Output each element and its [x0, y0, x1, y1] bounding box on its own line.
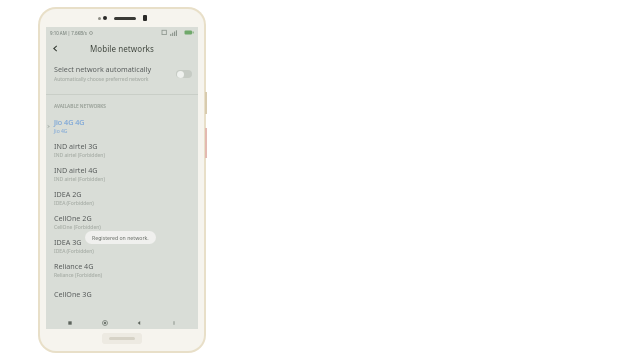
button[interactable]: Back [46, 39, 64, 57]
button[interactable]: Reliance 4G [46, 258, 198, 282]
button[interactable]: Select network automatically toggle [176, 70, 192, 78]
staticText: Mobile networks [90, 43, 154, 54]
staticText: Registered on network. [92, 234, 149, 241]
staticText: IND airtel (Forbidden) [54, 152, 105, 159]
staticText: Automatically choose preferred network [54, 76, 149, 83]
button[interactable]: IDEA 2G [46, 186, 198, 210]
staticText: Jio 4G 4G [54, 117, 85, 127]
staticText: CellOne (Forbidden) [54, 224, 101, 231]
staticText: IDEA 3G [54, 237, 82, 247]
button[interactable]: IDEA 3G [46, 234, 198, 258]
staticText: Jio 4G [54, 128, 68, 135]
staticText: CellOne 3G [54, 289, 92, 299]
staticText: 9:10 AM | 7.6KB/s [50, 30, 87, 36]
staticText: Reliance 4G [54, 261, 94, 271]
staticText: Select network automatically [54, 64, 152, 74]
button[interactable]: Back [129, 317, 149, 329]
button[interactable]: IND airtel 3G [46, 138, 198, 162]
staticText: IDEA 2G [54, 189, 82, 199]
staticText: CellOne 2G [54, 213, 92, 223]
button[interactable]: Recent apps [60, 317, 80, 329]
staticText: IDEA (Forbidden) [54, 200, 94, 207]
staticText: AVAILABLE NETWORKS [54, 103, 106, 110]
staticText: Reliance (Forbidden) [54, 272, 103, 279]
staticText: IND airtel 3G [54, 141, 98, 151]
button[interactable]: IND airtel 4G [46, 162, 198, 186]
button[interactable]: Menu [164, 317, 184, 329]
staticText: IND airtel 4G [54, 165, 98, 175]
button[interactable]: Jio 4G 4G [46, 114, 198, 138]
button[interactable]: Select network automatically [46, 58, 198, 87]
button[interactable]: CellOne 3G [46, 282, 198, 306]
button[interactable]: CellOne 2G [46, 210, 198, 234]
staticText: IDEA (Forbidden) [54, 248, 94, 255]
button[interactable]: Home [95, 317, 115, 329]
staticText: IND airtel (Forbidden) [54, 176, 105, 183]
